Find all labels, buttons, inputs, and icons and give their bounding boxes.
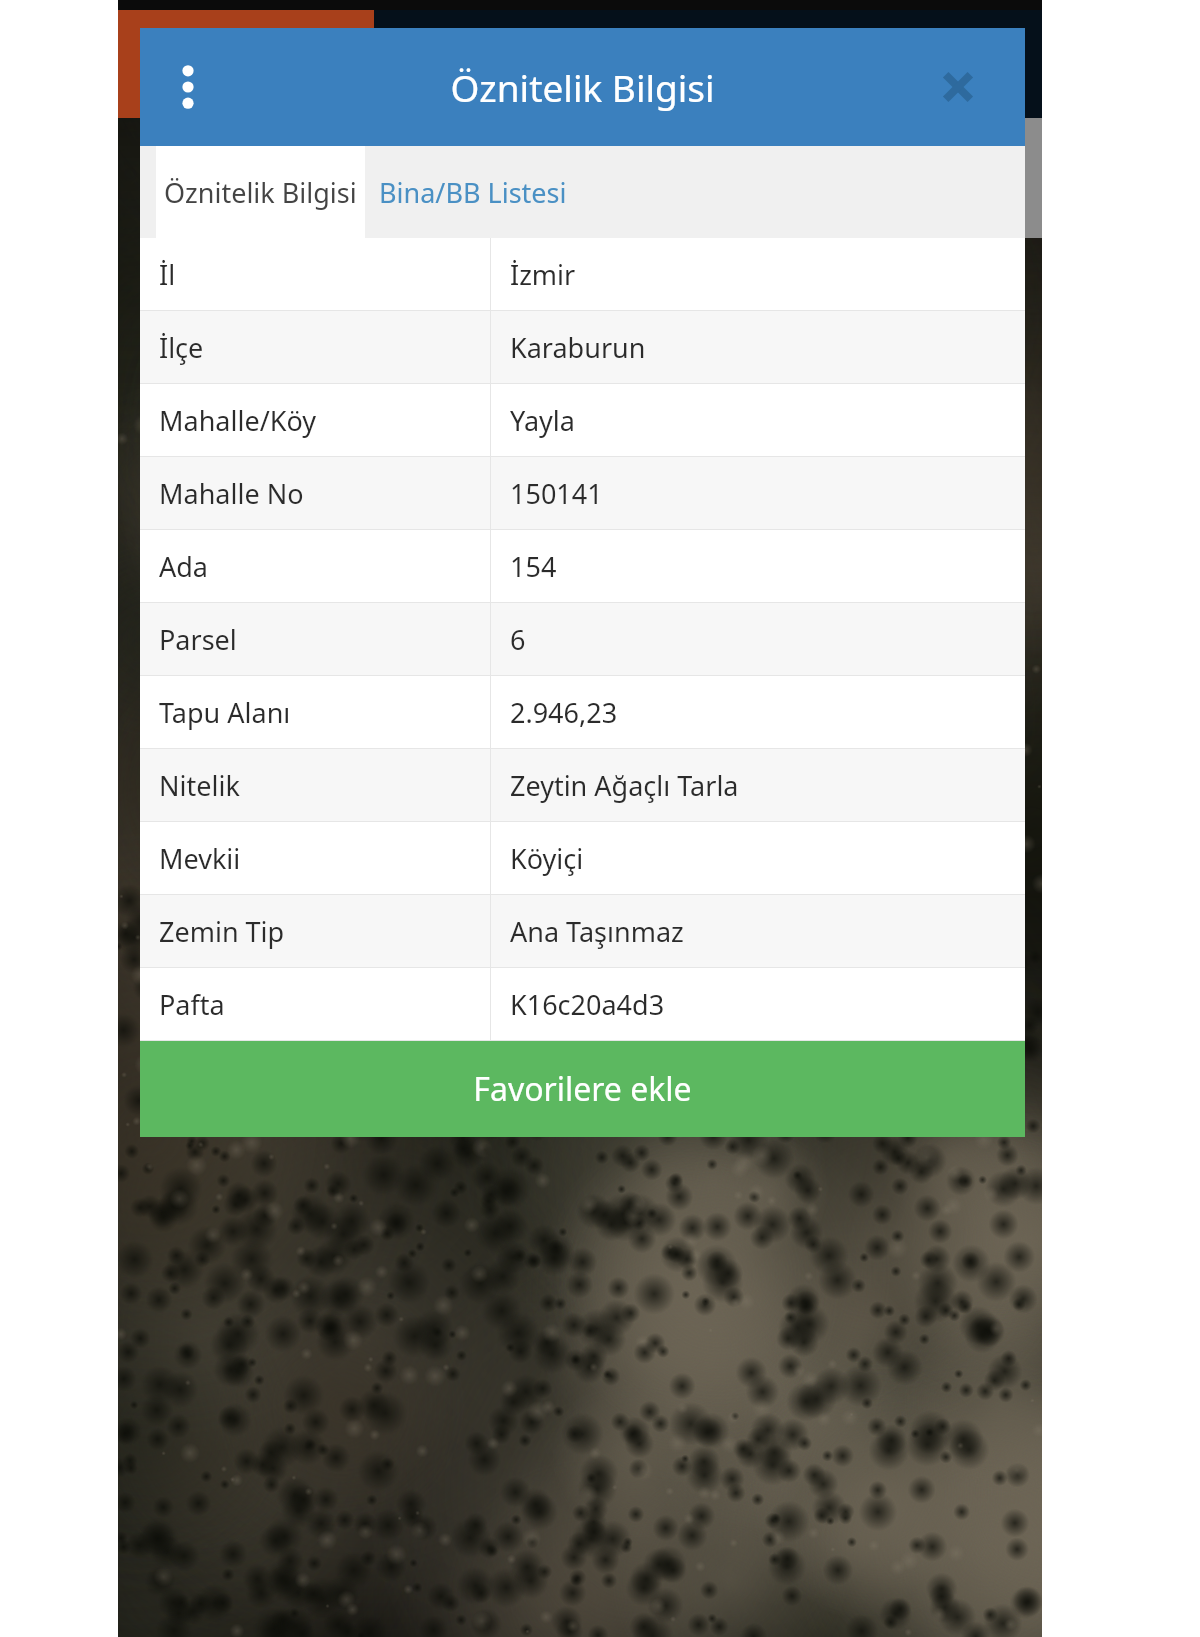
button[interactable]: More options — [160, 51, 216, 123]
staticText: Öznitelik Bilgisi — [450, 62, 715, 112]
button[interactable]: Pafta — [140, 968, 1025, 1041]
staticText: Bina/BB Listesi — [379, 174, 567, 211]
button[interactable]: Mahalle/Köy — [140, 384, 1025, 457]
staticText: Zemin Tip — [159, 913, 285, 950]
staticText: 150141 — [510, 475, 603, 512]
staticText: Zeytin Ağaçlı Tarla — [510, 767, 739, 804]
staticText: İl — [159, 256, 176, 293]
button[interactable]: İlçe — [140, 311, 1025, 384]
staticText: Ada — [159, 548, 209, 585]
staticText: 6 — [510, 621, 526, 658]
button[interactable]: Bina/BB Listesi — [365, 146, 580, 238]
button[interactable]: Ada — [140, 530, 1025, 603]
button[interactable]: Mevkii — [140, 822, 1025, 895]
staticText: Parsel — [159, 621, 237, 658]
staticText: 154 — [510, 548, 557, 585]
staticText: Karaburun — [510, 329, 646, 366]
button[interactable]: Nitelik — [140, 749, 1025, 822]
staticText: Ana Taşınmaz — [510, 913, 684, 950]
staticText: Yayla — [510, 402, 575, 439]
button[interactable]: Parsel — [140, 603, 1025, 676]
staticText: Favorilere ekle — [473, 1067, 692, 1111]
staticText: Mahalle No — [159, 475, 304, 512]
staticText: Öznitelik Bilgisi — [164, 174, 357, 211]
staticText: K16c20a4d3 — [510, 986, 665, 1023]
button[interactable]: Close — [927, 56, 989, 118]
staticText: Nitelik — [159, 767, 240, 804]
button[interactable]: Mahalle No — [140, 457, 1025, 530]
button[interactable]: Favorilere ekle — [140, 1041, 1025, 1137]
staticText: 2.946,23 — [510, 694, 618, 731]
staticText: Mahalle/Köy — [159, 402, 316, 439]
staticText: Mevkii — [159, 840, 241, 877]
button[interactable]: Tapu Alanı — [140, 676, 1025, 749]
staticText: İzmir — [510, 256, 576, 293]
staticText: Köyiçi — [510, 840, 584, 877]
button[interactable]: İl — [140, 238, 1025, 311]
staticText: İlçe — [159, 329, 204, 366]
staticText: Pafta — [159, 986, 225, 1023]
button[interactable]: Öznitelik Bilgisi — [156, 146, 365, 238]
staticText: Tapu Alanı — [159, 694, 291, 731]
button[interactable]: Zemin Tip — [140, 895, 1025, 968]
